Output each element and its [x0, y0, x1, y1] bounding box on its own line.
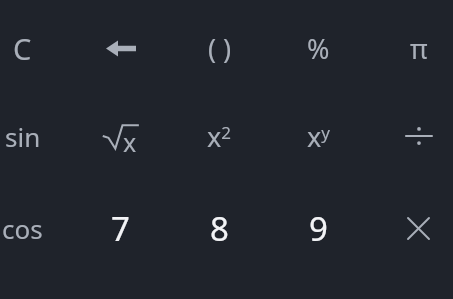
button[interactable]: xy: [269, 91, 368, 181]
button[interactable]: cos: [0, 183, 72, 273]
button[interactable]: Backspace: [71, 3, 170, 93]
button[interactable]: Multiply: [369, 183, 453, 273]
button[interactable]: Clear: [0, 3, 72, 93]
staticText: xy: [307, 118, 330, 155]
button[interactable]: Square root: [71, 91, 170, 181]
button[interactable]: Percent: [269, 3, 368, 93]
staticText: cos: [2, 211, 43, 246]
button[interactable]: sin: [0, 91, 72, 181]
staticText: x: [123, 125, 137, 155]
staticText: 8: [210, 206, 229, 251]
staticText: π: [410, 30, 428, 67]
button[interactable]: 9: [269, 183, 368, 273]
staticText: x2: [207, 118, 232, 155]
button[interactable]: 7: [71, 183, 170, 273]
button[interactable]: x2: [170, 91, 269, 181]
staticText: 9: [309, 206, 328, 251]
button[interactable]: Divide: [369, 91, 453, 181]
staticText: %: [307, 30, 330, 67]
staticText: 7: [111, 206, 130, 251]
button[interactable]: Pi: [369, 3, 453, 93]
staticText: C: [13, 29, 32, 68]
button[interactable]: Parentheses: [170, 3, 269, 93]
button[interactable]: 8: [170, 183, 269, 273]
staticText: sin: [5, 119, 41, 154]
staticText: ( ): [208, 30, 232, 67]
